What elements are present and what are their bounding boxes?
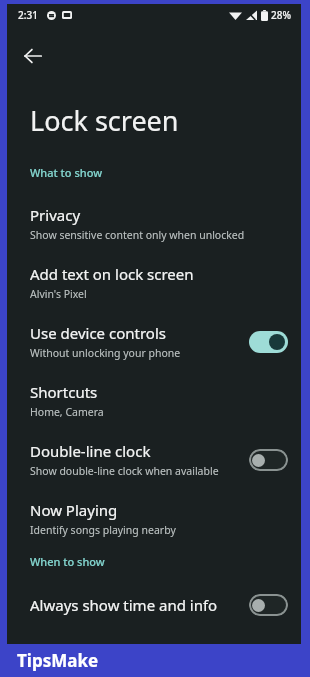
button[interactable]: Toggle on	[249, 331, 288, 353]
staticText: 28%	[271, 8, 291, 22]
button[interactable]: Use device controls	[7, 312, 301, 371]
staticText: Lock screen	[30, 102, 179, 139]
button[interactable]: Now Playing	[7, 489, 301, 548]
staticText: Identify songs playing nearby	[30, 523, 176, 537]
staticText: Privacy	[30, 205, 81, 225]
button[interactable]: Shortcuts	[7, 371, 301, 430]
button[interactable]: Back	[15, 38, 51, 74]
button[interactable]: Privacy	[7, 194, 301, 253]
staticText: Without unlocking your phone	[30, 346, 181, 360]
staticText: Show sensitive content only when unlocke…	[30, 228, 245, 242]
button[interactable]: Double-line clock	[7, 430, 301, 489]
staticText: 2:31	[18, 8, 38, 22]
staticText: Show double-line clock when available	[30, 464, 219, 478]
staticText: Alvin's Pixel	[30, 287, 87, 301]
button[interactable]: Always show time and info	[7, 583, 301, 627]
staticText: Add text on lock screen	[30, 264, 194, 284]
staticText: Always show time and info	[30, 595, 218, 615]
button[interactable]: Add text on lock screen	[7, 253, 301, 312]
button[interactable]: Toggle off	[249, 449, 288, 471]
button[interactable]: Toggle off	[249, 594, 288, 616]
staticText: Home, Camera	[30, 405, 104, 419]
staticText: Now Playing	[30, 500, 118, 520]
staticText: When to show	[30, 554, 105, 569]
staticText: What to show	[30, 165, 103, 180]
staticText: Double-line clock	[30, 441, 151, 461]
staticText: TipsMake	[17, 649, 99, 672]
staticText: Use device controls	[30, 323, 166, 343]
staticText: Shortcuts	[30, 382, 98, 402]
